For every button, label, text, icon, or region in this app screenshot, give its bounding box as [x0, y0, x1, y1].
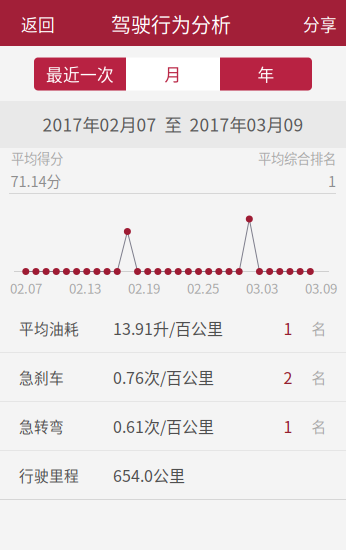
- staticText: 1: [283, 414, 292, 438]
- staticText: 2017年02月07 至 2017年03月09: [42, 111, 303, 137]
- staticText: 急刹车: [19, 366, 64, 388]
- staticText: 1: [328, 170, 336, 191]
- staticText: 平均综合排名: [258, 148, 336, 168]
- button[interactable]: 平均油耗: [0, 303, 346, 352]
- staticText: 返回: [21, 12, 55, 36]
- staticText: 0.76次/百公里: [113, 365, 214, 389]
- staticText: 2: [283, 365, 292, 389]
- staticText: 月: [164, 62, 181, 86]
- staticText: 02.07: [10, 278, 42, 298]
- button[interactable]: 返回: [10, 1, 66, 47]
- staticText: 名: [311, 317, 326, 339]
- staticText: 1: [283, 316, 292, 340]
- button[interactable]: 行驶里程: [0, 450, 346, 499]
- staticText: 最近一次: [46, 62, 114, 86]
- button[interactable]: 急刹车: [0, 352, 346, 401]
- staticText: 名: [311, 415, 326, 437]
- staticText: 平均得分: [11, 148, 63, 168]
- staticText: 行驶里程: [19, 464, 79, 486]
- staticText: 名: [311, 366, 326, 388]
- button[interactable]: 最近一次: [34, 57, 126, 90]
- button[interactable]: 年: [220, 57, 312, 90]
- staticText: 分享: [303, 12, 337, 36]
- staticText: 654.0公里: [113, 463, 185, 487]
- staticText: 03.03: [246, 278, 278, 298]
- staticText: 0.61次/百公里: [113, 414, 214, 438]
- staticText: 年: [257, 62, 274, 86]
- staticText: 71.14分: [10, 170, 61, 191]
- button[interactable]: 月: [126, 57, 220, 90]
- staticText: 平均油耗: [19, 317, 79, 339]
- staticText: 02.25: [187, 278, 219, 298]
- staticText: 13.91升/百公里: [113, 316, 223, 340]
- staticText: 03.09: [305, 278, 337, 298]
- staticText: 急转弯: [19, 415, 64, 437]
- staticText: 驾驶行为分析: [111, 9, 231, 38]
- button[interactable]: 分享: [292, 1, 346, 47]
- button[interactable]: 急转弯: [0, 401, 346, 450]
- staticText: 02.13: [69, 278, 101, 298]
- staticText: 02.19: [128, 278, 160, 298]
